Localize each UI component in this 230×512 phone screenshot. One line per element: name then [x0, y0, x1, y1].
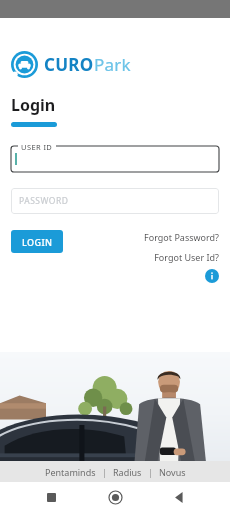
button[interactable]: Information [205, 269, 219, 283]
button[interactable]: Forgot Password? [144, 230, 219, 244]
button[interactable]: Home [102, 484, 128, 510]
button[interactable]: LOGIN [11, 230, 63, 253]
staticText: Login [11, 94, 56, 116]
staticText: LOGIN [22, 236, 53, 248]
staticText: USER ID [21, 142, 53, 152]
staticText: Pentaminds [45, 466, 96, 478]
staticText: Park [94, 53, 131, 76]
button[interactable]: PASSWORD [11, 188, 219, 214]
staticText: CURO [44, 53, 94, 76]
staticText: | [102, 466, 107, 478]
button[interactable]: USER ID [11, 142, 219, 172]
staticText: Radius [113, 466, 142, 478]
staticText: Forgot User Id? [154, 251, 219, 263]
button[interactable]: Recent apps [38, 484, 64, 510]
staticText: Novus [159, 466, 186, 478]
button[interactable]: Novus [156, 464, 189, 480]
staticText: PASSWORD [19, 195, 69, 207]
button[interactable]: Radius [110, 464, 145, 480]
button[interactable]: Forgot User Id? [154, 250, 219, 264]
staticText: Forgot Password? [144, 231, 219, 243]
staticText: | [148, 466, 153, 478]
button[interactable]: Pentaminds [42, 464, 99, 480]
button[interactable]: Back [166, 484, 192, 510]
